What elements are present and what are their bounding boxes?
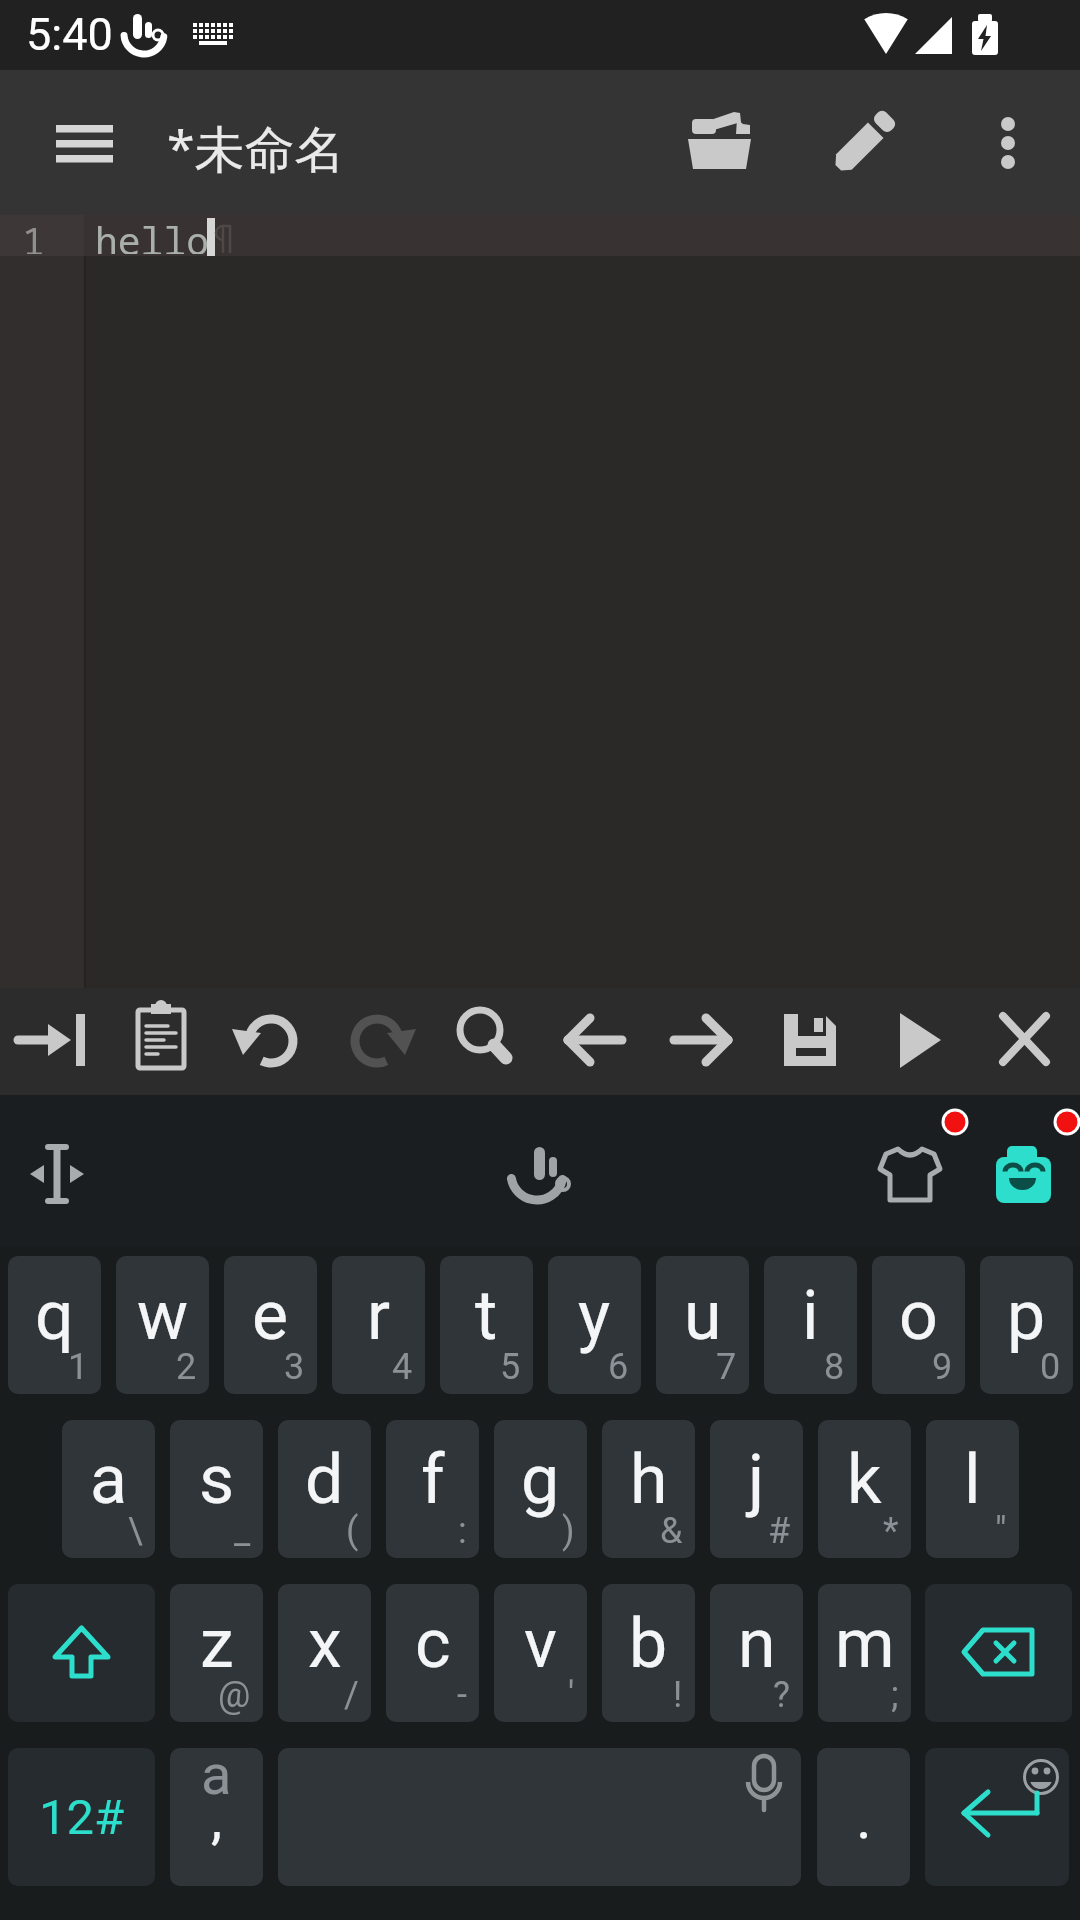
staticText: ' xyxy=(568,1674,575,1716)
staticText: 5:40 xyxy=(26,8,113,61)
button[interactable]: g xyxy=(494,1420,587,1558)
button[interactable]: t xyxy=(440,1256,533,1394)
button[interactable] xyxy=(876,1143,944,1207)
button[interactable]: b xyxy=(602,1584,695,1722)
staticText: ) xyxy=(562,1510,575,1552)
staticText: n xyxy=(738,1604,776,1684)
staticText: \ xyxy=(128,1510,143,1552)
staticText: @ xyxy=(218,1674,251,1716)
staticText: k xyxy=(847,1440,882,1520)
button[interactable]: o xyxy=(872,1256,965,1394)
staticText: * xyxy=(883,1510,899,1552)
staticText: l xyxy=(964,1440,981,1520)
staticText: g xyxy=(521,1440,560,1520)
staticText: - xyxy=(457,1674,467,1716)
staticText: 3 xyxy=(284,1346,305,1388)
staticText: a xyxy=(201,1742,232,1808)
staticText: v xyxy=(524,1604,557,1684)
button[interactable] xyxy=(278,1748,801,1886)
staticText: q xyxy=(35,1276,74,1356)
button[interactable] xyxy=(972,988,1080,1095)
staticText: j xyxy=(748,1440,765,1520)
staticText: 5 xyxy=(500,1346,521,1388)
button[interactable]: w xyxy=(116,1256,209,1394)
staticText: s xyxy=(199,1440,235,1520)
button[interactable] xyxy=(756,988,864,1095)
button[interactable]: n xyxy=(710,1584,803,1722)
button[interactable] xyxy=(216,988,324,1095)
staticText: w xyxy=(137,1276,189,1356)
staticText: 1 xyxy=(22,214,45,254)
button[interactable] xyxy=(670,95,774,191)
staticText: x xyxy=(308,1604,342,1684)
button[interactable]: v xyxy=(494,1584,587,1722)
button[interactable] xyxy=(993,1140,1055,1206)
button[interactable] xyxy=(8,1584,155,1722)
button[interactable] xyxy=(324,988,432,1095)
button[interactable] xyxy=(980,105,1036,181)
button[interactable] xyxy=(0,988,108,1095)
button[interactable]: r xyxy=(332,1256,425,1394)
staticText: *未命名 xyxy=(167,114,345,182)
staticText: ! xyxy=(673,1674,683,1716)
button[interactable]: . xyxy=(817,1748,910,1886)
staticText: z xyxy=(200,1604,234,1684)
button[interactable]: a xyxy=(62,1420,155,1558)
button[interactable]: z xyxy=(170,1584,263,1722)
staticText: hello xyxy=(95,214,210,254)
staticText: u xyxy=(684,1276,722,1356)
staticText: # xyxy=(768,1510,791,1552)
button[interactable] xyxy=(864,988,972,1095)
staticText: : xyxy=(458,1510,467,1552)
button[interactable] xyxy=(815,95,911,191)
button[interactable]: m xyxy=(818,1584,911,1722)
staticText: a xyxy=(90,1440,127,1520)
staticText: 8 xyxy=(824,1346,845,1388)
staticText: f xyxy=(421,1440,445,1520)
staticText: 1 xyxy=(68,1346,89,1388)
staticText: 6 xyxy=(608,1346,629,1388)
button[interactable]: f xyxy=(386,1420,479,1558)
button[interactable] xyxy=(540,988,648,1095)
staticText: i xyxy=(802,1276,819,1356)
button[interactable] xyxy=(925,1748,1069,1886)
button[interactable]: 12# xyxy=(8,1748,155,1886)
button[interactable]: l xyxy=(926,1420,1019,1558)
staticText: o xyxy=(899,1276,938,1356)
button[interactable]: k xyxy=(818,1420,911,1558)
button[interactable] xyxy=(432,988,540,1095)
button[interactable]: p xyxy=(980,1256,1073,1394)
staticText: p xyxy=(1007,1276,1046,1356)
staticText: ? xyxy=(773,1674,791,1716)
staticText: . xyxy=(856,1782,872,1852)
button[interactable]: a xyxy=(170,1748,263,1886)
button[interactable]: q xyxy=(8,1256,101,1394)
button[interactable] xyxy=(648,988,756,1095)
button[interactable] xyxy=(108,988,216,1095)
staticText: ( xyxy=(346,1510,359,1552)
staticText: d xyxy=(305,1440,344,1520)
button[interactable]: u xyxy=(656,1256,749,1394)
button[interactable]: x xyxy=(278,1584,371,1722)
button[interactable]: y xyxy=(548,1256,641,1394)
button[interactable]: s xyxy=(170,1420,263,1558)
staticText: " xyxy=(995,1510,1007,1552)
staticText: / xyxy=(344,1674,359,1716)
button[interactable]: i xyxy=(764,1256,857,1394)
staticText: , xyxy=(211,1786,223,1852)
staticText: t xyxy=(475,1276,498,1356)
staticText: 2 xyxy=(176,1346,197,1388)
button[interactable]: h xyxy=(602,1420,695,1558)
button[interactable] xyxy=(40,108,128,178)
staticText: & xyxy=(660,1510,683,1552)
staticText: e xyxy=(252,1276,289,1356)
staticText: r xyxy=(367,1276,391,1356)
staticText: y xyxy=(578,1276,611,1356)
staticText: 9 xyxy=(932,1346,953,1388)
button[interactable]: c xyxy=(386,1584,479,1722)
button[interactable]: d xyxy=(278,1420,371,1558)
button[interactable] xyxy=(925,1584,1072,1722)
button[interactable]: j xyxy=(710,1420,803,1558)
staticText: ; xyxy=(891,1674,899,1716)
button[interactable]: e xyxy=(224,1256,317,1394)
